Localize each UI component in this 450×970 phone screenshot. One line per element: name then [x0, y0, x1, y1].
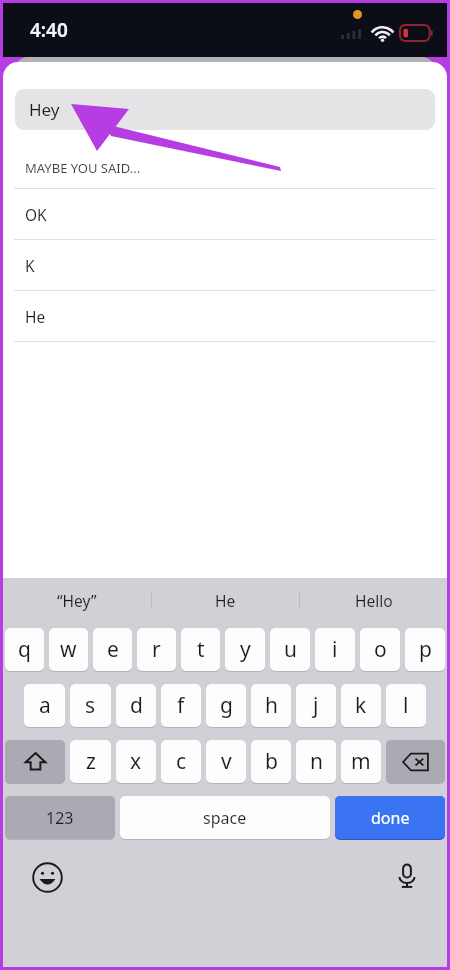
button[interactable]: e — [93, 628, 132, 674]
staticText: n — [310, 747, 323, 776]
staticText: m — [351, 747, 371, 776]
staticText: e — [107, 635, 119, 664]
staticText: y — [240, 635, 251, 664]
staticText: a — [39, 691, 51, 720]
staticText: Hey — [29, 98, 60, 121]
button[interactable]: K — [3, 240, 447, 290]
button[interactable]: r — [137, 628, 176, 674]
staticText: He — [215, 590, 236, 611]
button[interactable]: w — [49, 628, 88, 674]
button[interactable]: space — [120, 796, 330, 842]
button[interactable]: s — [70, 684, 111, 730]
staticText: w — [60, 635, 77, 664]
staticText: r — [152, 635, 161, 664]
button[interactable]: 123 — [5, 796, 115, 842]
staticText: o — [374, 635, 387, 664]
button[interactable]: p — [405, 628, 445, 674]
staticText: i — [332, 635, 338, 664]
staticText: t — [197, 635, 205, 664]
button[interactable]: x — [116, 740, 156, 786]
button[interactable]: Emoji — [29, 859, 65, 895]
button[interactable]: t — [181, 628, 220, 674]
staticText: u — [284, 635, 297, 664]
button[interactable]: He — [152, 578, 299, 622]
staticText: “Hey” — [57, 590, 97, 611]
button[interactable]: k — [341, 684, 381, 730]
staticText: g — [220, 691, 233, 720]
button[interactable]: u — [270, 628, 310, 674]
button[interactable]: c — [161, 740, 201, 786]
button[interactable]: n — [296, 740, 336, 786]
button[interactable]: Backspace — [386, 740, 445, 786]
staticText: space — [203, 807, 247, 829]
staticText: 4:40 — [30, 17, 68, 43]
staticText: MAYBE YOU SAID... — [25, 159, 141, 177]
staticText: K — [25, 255, 35, 276]
staticText: q — [18, 635, 31, 664]
button[interactable]: a — [24, 684, 65, 730]
button[interactable]: i — [315, 628, 355, 674]
button[interactable]: v — [206, 740, 246, 786]
button[interactable]: OK — [3, 189, 447, 239]
staticText: v — [221, 747, 232, 776]
button[interactable]: done — [335, 796, 445, 842]
staticText: j — [313, 691, 319, 720]
button[interactable]: Shift — [5, 740, 65, 786]
button[interactable]: j — [296, 684, 336, 730]
button[interactable]: q — [5, 628, 44, 674]
staticText: OK — [25, 204, 47, 225]
button[interactable]: Hello — [300, 578, 447, 622]
button[interactable]: Hey — [15, 89, 435, 130]
button[interactable]: b — [251, 740, 291, 786]
staticText: c — [176, 747, 187, 776]
button[interactable]: l — [386, 684, 426, 730]
staticText: 123 — [46, 807, 74, 829]
staticText: s — [85, 691, 96, 720]
button[interactable]: g — [206, 684, 246, 730]
staticText: h — [265, 691, 278, 720]
staticText: b — [265, 747, 278, 776]
staticText: l — [403, 691, 409, 720]
staticText: Hello — [355, 590, 393, 611]
staticText: z — [86, 747, 96, 776]
button[interactable]: f — [161, 684, 201, 730]
staticText: p — [419, 635, 432, 664]
staticText: f — [177, 691, 185, 720]
button[interactable]: z — [70, 740, 111, 786]
button[interactable]: h — [251, 684, 291, 730]
button[interactable]: Dictation — [389, 858, 425, 894]
staticText: k — [355, 691, 367, 720]
staticText: He — [25, 306, 46, 327]
button[interactable]: y — [225, 628, 265, 674]
button[interactable]: He — [3, 291, 447, 341]
button[interactable]: o — [360, 628, 400, 674]
staticText: done — [371, 807, 410, 829]
button[interactable]: “Hey” — [3, 578, 151, 622]
staticText: d — [130, 691, 143, 720]
button[interactable]: d — [116, 684, 156, 730]
staticText: x — [130, 747, 142, 776]
button[interactable]: m — [341, 740, 381, 786]
